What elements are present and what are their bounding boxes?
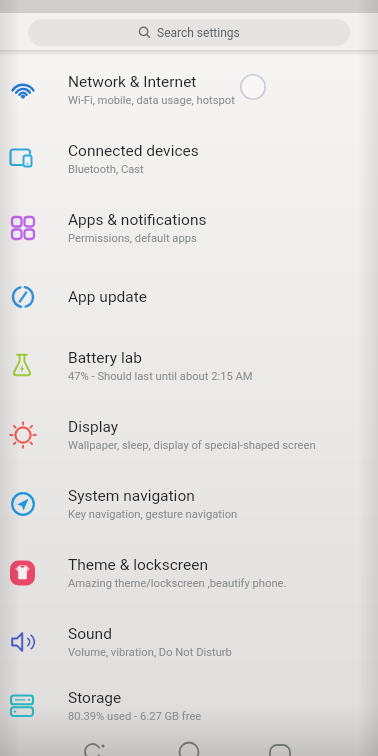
button[interactable]: [177, 735, 201, 756]
staticText: Key navigation, gesture navigation: [68, 508, 238, 521]
button[interactable]: [80, 735, 106, 756]
button[interactable]: Storage: [0, 676, 378, 735]
button[interactable]: Display: [0, 400, 378, 469]
button[interactable]: Theme & lockscreen: [0, 538, 378, 607]
staticText: Sound: [68, 625, 112, 643]
staticText: Network & Internet: [68, 73, 197, 91]
staticText: Amazing theme/lockscreen ,beautify phone…: [68, 577, 287, 590]
button[interactable]: System navigation: [0, 469, 378, 538]
staticText: Wi-Fi, mobile, data usage, hotspot: [68, 94, 235, 107]
button[interactable]: Battery lab: [0, 331, 378, 400]
staticText: Permissions, default apps: [68, 232, 197, 245]
staticText: Connected devices: [68, 142, 199, 160]
button[interactable]: [268, 735, 292, 756]
button[interactable]: Search settings: [28, 19, 350, 46]
staticText: Apps & notifications: [68, 211, 207, 229]
staticText: 80.39% used - 6.27 GB free: [68, 710, 202, 723]
staticText: App update: [68, 288, 148, 306]
staticText: 47% - Should last until about 2:15 AM: [68, 370, 253, 383]
button[interactable]: Network & Internet: [0, 55, 378, 124]
button[interactable]: Apps & notifications: [0, 193, 378, 262]
staticText: Volume, vibration, Do Not Disturb: [68, 646, 232, 659]
staticText: Storage: [68, 689, 122, 707]
button[interactable]: App update: [0, 262, 378, 331]
staticText: Wallpaper, sleep, display of special-sha…: [68, 439, 316, 452]
staticText: Bluetooth, Cast: [68, 163, 144, 176]
staticText: Battery lab: [68, 349, 142, 367]
staticText: Search settings: [157, 26, 240, 40]
button[interactable]: Sound: [0, 607, 378, 676]
staticText: System navigation: [68, 487, 195, 505]
staticText: Display: [68, 418, 119, 436]
button[interactable]: Connected devices: [0, 124, 378, 193]
staticText: Theme & lockscreen: [68, 556, 208, 574]
